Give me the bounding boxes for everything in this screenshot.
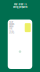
staticText: Starbucks Reserve	[9, 21, 14, 30]
staticText: Your order is	[13, 3, 26, 6]
staticText: being prepared	[13, 6, 27, 8]
staticText: Order #1042	[9, 30, 14, 34]
